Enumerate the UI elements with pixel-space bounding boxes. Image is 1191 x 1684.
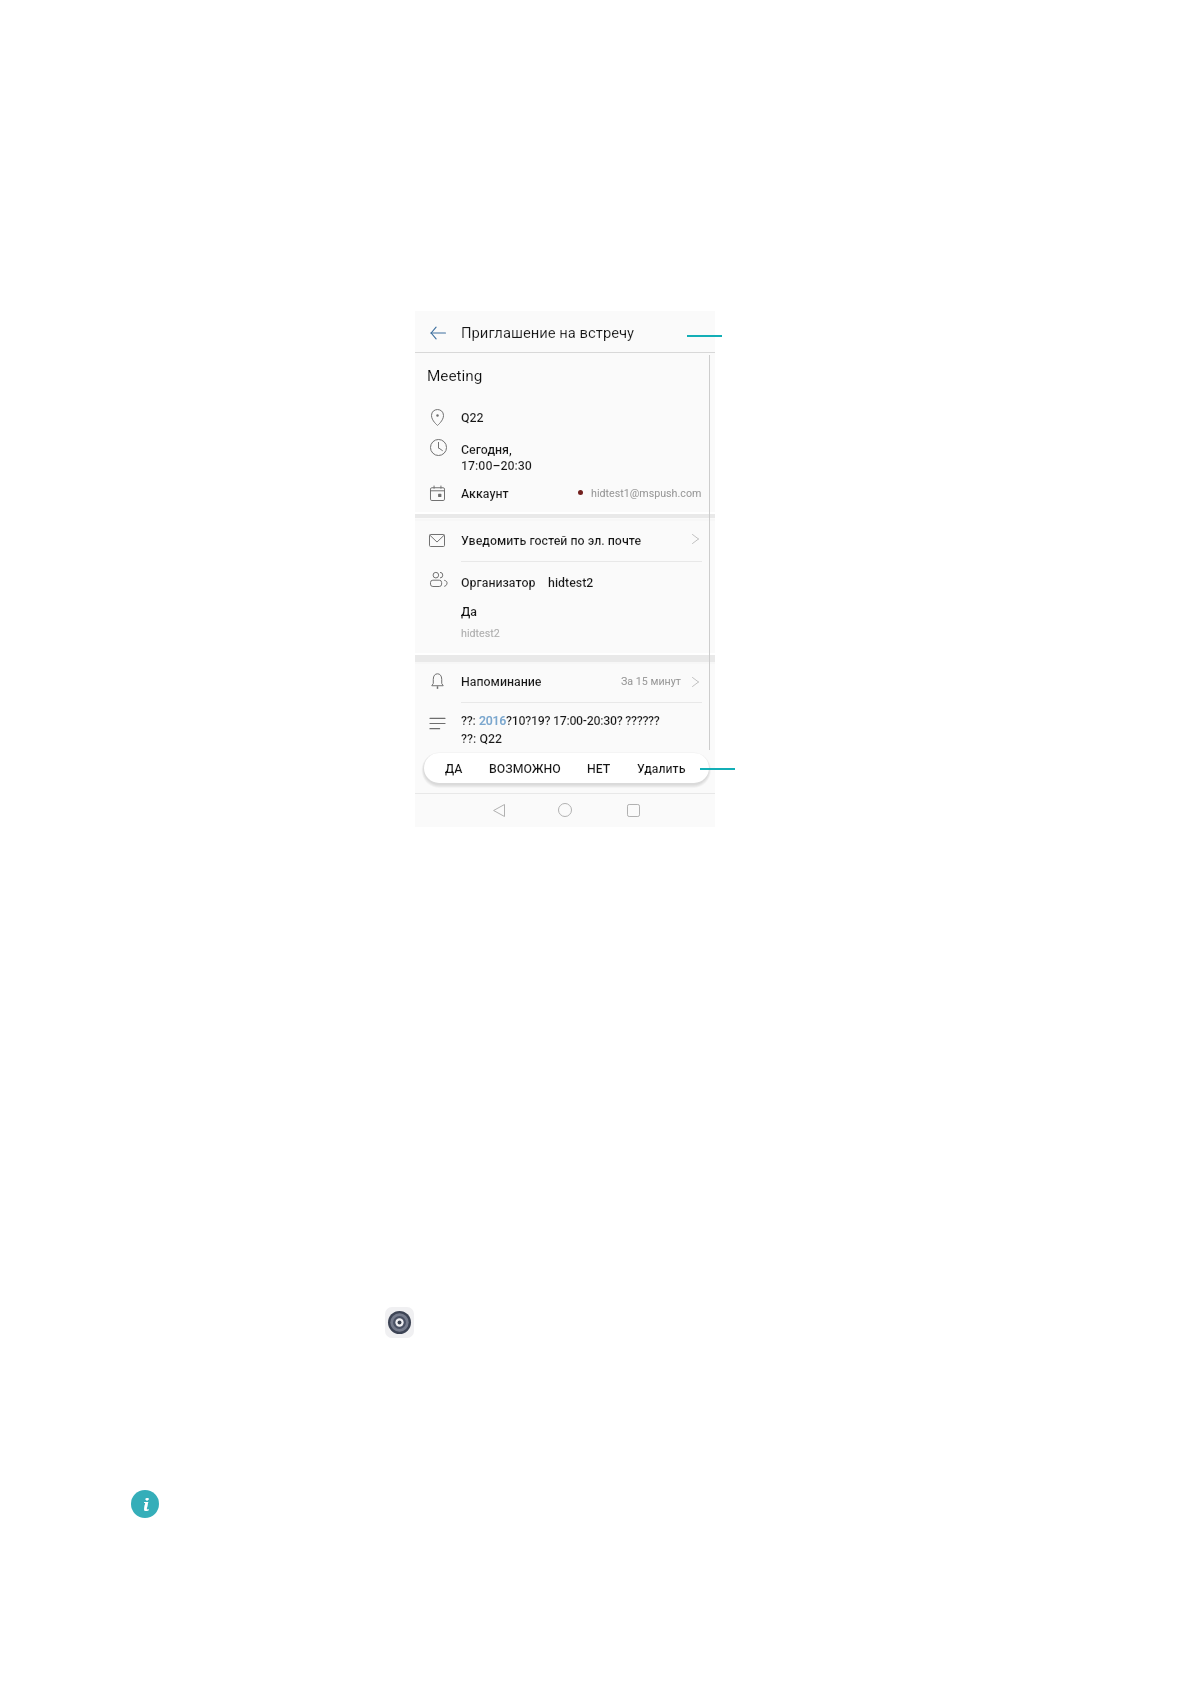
staticText: Удалить [637, 762, 686, 776]
button[interactable]: Back [421, 316, 455, 350]
staticText: Уведомить гостей по эл. почте [461, 533, 642, 548]
staticText: hidtest1@mspush.com [591, 487, 702, 500]
staticText: 2016 [479, 713, 506, 728]
staticText: Q22 [461, 410, 484, 425]
button[interactable]: ВОЗМОЖНО [483, 754, 567, 784]
button[interactable]: НЕТ [581, 754, 617, 784]
staticText: Приглашение на встречу [461, 324, 635, 341]
staticText: За 15 минут [621, 675, 681, 688]
staticText: ВОЗМОЖНО [489, 762, 561, 776]
button[interactable]: App icon [385, 1307, 414, 1338]
staticText: ??: Q22 [461, 731, 503, 746]
staticText: Да [461, 604, 477, 619]
button[interactable]: Удалить [631, 754, 692, 784]
button[interactable]: Back [484, 795, 514, 825]
staticText: hidtest2 [461, 627, 500, 640]
staticText: Аккаунт [461, 486, 509, 501]
button[interactable]: ДА [439, 754, 469, 784]
staticText: ??: [461, 713, 479, 728]
button[interactable]: Напоминание [415, 665, 715, 700]
staticText: Meeting [427, 367, 483, 385]
staticText: НЕТ [587, 762, 611, 776]
staticText: Напоминание [461, 674, 542, 689]
staticText: Сегодня, [461, 442, 512, 457]
staticText: ?10?19? 17:00-20:30? ?????? [506, 713, 660, 728]
button[interactable]: Recents [618, 795, 648, 825]
staticText: Организатор [461, 575, 536, 590]
button[interactable]: Home [550, 795, 580, 825]
staticText: hidtest2 [548, 575, 594, 590]
staticText: ДА [445, 762, 463, 776]
staticText: i [143, 1493, 150, 1516]
staticText: 17:00–20:30 [461, 458, 532, 473]
button[interactable]: Уведомить гостей по эл. почте [415, 523, 715, 558]
button[interactable]: Information [131, 1490, 159, 1518]
